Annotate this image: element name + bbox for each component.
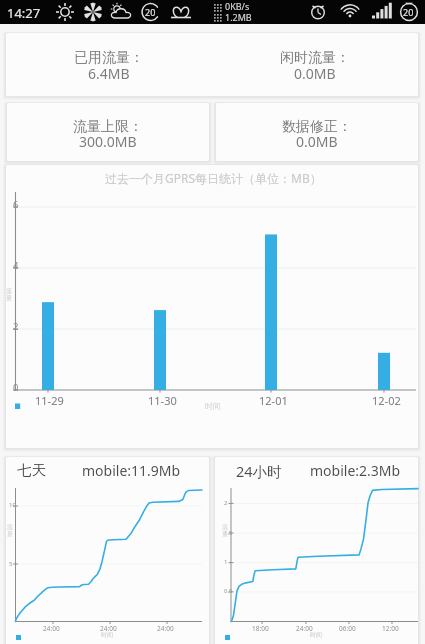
staticText: 流量上限： — [73, 118, 143, 136]
button[interactable]: 已用流量： — [6, 33, 212, 96]
staticText: 12:00 — [382, 624, 399, 633]
staticText: 24:00 — [296, 624, 313, 633]
staticText: 11-29 — [35, 393, 64, 408]
staticText: 七天 — [17, 461, 46, 479]
staticText: 24:00 — [43, 624, 60, 633]
staticText: 24小时 — [236, 461, 282, 481]
staticText: mobile:11.9Mb — [82, 461, 181, 480]
staticText: 20 — [145, 6, 156, 18]
staticText: 6 — [13, 198, 19, 211]
staticText: 4 — [13, 259, 19, 272]
staticText: 2 — [13, 320, 19, 333]
staticText: 流 量 — [6, 287, 12, 302]
staticText: 12-02 — [372, 393, 401, 408]
staticText: 0.0MB — [296, 132, 338, 151]
button[interactable]: 闲时流量： — [212, 33, 418, 96]
staticText: 2 — [224, 499, 228, 507]
staticText: 1.5 — [224, 529, 233, 537]
staticText: 0KB/s — [225, 0, 250, 12]
staticText: 0 — [13, 381, 19, 394]
staticText: 0.5 — [224, 587, 233, 595]
staticText: 10 — [9, 501, 16, 509]
staticText: 20 — [403, 6, 414, 18]
staticText: 流 量 — [222, 523, 228, 538]
staticText: 数据修正： — [282, 118, 352, 136]
staticText: 06:00 — [339, 624, 356, 633]
staticText: 时间 — [205, 401, 221, 411]
staticText: 18:00 — [252, 624, 269, 633]
staticText: 已用流量： — [74, 49, 144, 67]
staticText: 时间 — [101, 631, 113, 639]
button[interactable]: 过去一个月GPRS每日统计（单位：MB） — [6, 165, 418, 448]
staticText: 24:00 — [157, 624, 174, 633]
staticText: 300.0MB — [79, 132, 137, 151]
staticText: 1 — [224, 558, 228, 566]
staticText: 时间 — [310, 631, 322, 639]
staticText: mobile:2.3Mb — [310, 461, 401, 480]
staticText: 14:27 — [7, 4, 41, 22]
staticText: 6.4MB — [88, 64, 130, 83]
button[interactable]: 流量上限： — [7, 103, 209, 161]
staticText: 闲时流量： — [280, 49, 350, 67]
staticText: 1.2MB — [225, 11, 252, 23]
button[interactable]: 七天 — [6, 457, 209, 644]
staticText: 12-01 — [259, 393, 288, 408]
staticText: 24:00 — [100, 624, 117, 633]
staticText: 过去一个月GPRS每日统计（单位：MB） — [105, 170, 322, 186]
staticText: 11-30 — [148, 393, 177, 408]
button[interactable]: 24小时 — [215, 457, 418, 644]
staticText: 流 量 — [7, 523, 13, 538]
staticText: 5 — [9, 560, 13, 568]
staticText: 0.0MB — [294, 64, 336, 83]
button[interactable]: 数据修正： — [216, 103, 418, 161]
